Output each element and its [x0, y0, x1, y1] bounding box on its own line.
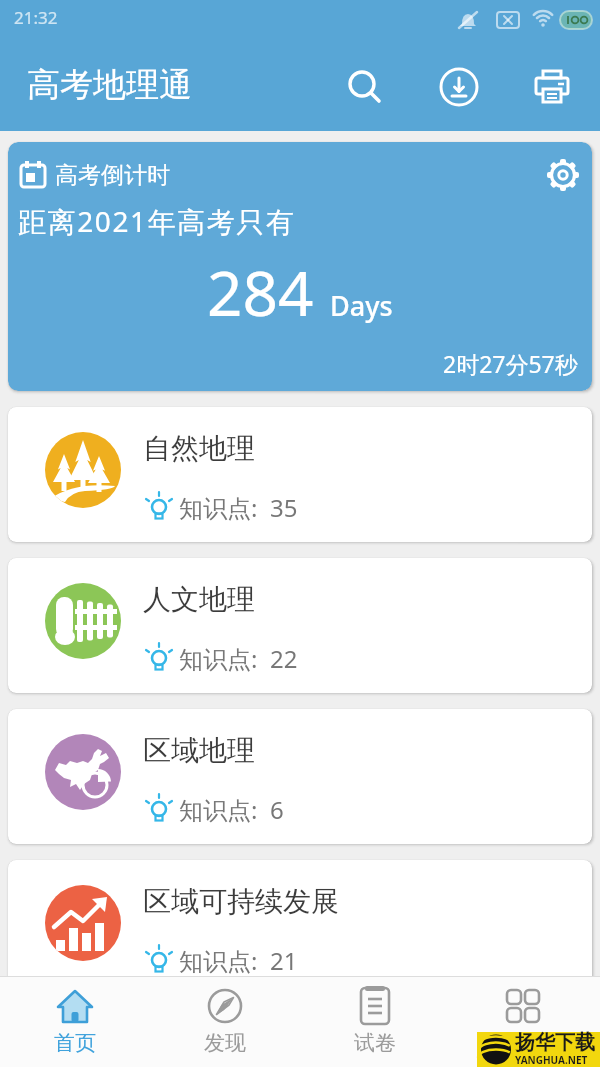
staticText: 2时27分57秒 — [443, 348, 578, 379]
staticText: YANGHUA.NET — [515, 1053, 588, 1067]
staticText: 知识点: 22 — [179, 642, 298, 675]
staticText: 人文地理 — [143, 582, 255, 617]
staticText: 试卷 — [354, 1030, 396, 1056]
button[interactable]: 自然地理 — [8, 407, 592, 542]
staticText: 21:32 — [14, 6, 58, 29]
button[interactable]: 高考倒计时 — [8, 142, 592, 391]
button[interactable] — [473, 986, 573, 1066]
staticText: 高考地理通 — [27, 64, 192, 106]
button[interactable]: 区域地理 — [8, 709, 592, 844]
staticText: 高考倒计时 — [55, 161, 170, 190]
staticText: 发现 — [204, 1030, 246, 1056]
button[interactable] — [341, 63, 389, 111]
button[interactable]: 发现 — [175, 986, 275, 1066]
button[interactable] — [542, 154, 584, 196]
staticText: 区域可持续发展 — [143, 884, 339, 919]
button[interactable] — [435, 63, 483, 111]
staticText: 知识点: 21 — [179, 944, 298, 977]
staticText: 知识点: 35 — [179, 491, 298, 524]
staticText: 扬华下载 — [515, 1030, 595, 1055]
button[interactable] — [528, 63, 576, 111]
staticText: 284 — [207, 250, 314, 334]
button[interactable]: 首页 — [25, 986, 125, 1066]
staticText: 自然地理 — [143, 431, 255, 466]
button[interactable]: 人文地理 — [8, 558, 592, 693]
button[interactable]: 试卷 — [325, 986, 425, 1066]
staticText: 首页 — [54, 1030, 96, 1056]
staticText: 知识点: 6 — [179, 793, 284, 826]
staticText: 距离2021年高考只有 — [18, 202, 296, 240]
button[interactable]: 区域可持续发展 — [8, 860, 592, 995]
staticText: 区域地理 — [143, 733, 255, 768]
staticText: Days — [330, 287, 393, 324]
